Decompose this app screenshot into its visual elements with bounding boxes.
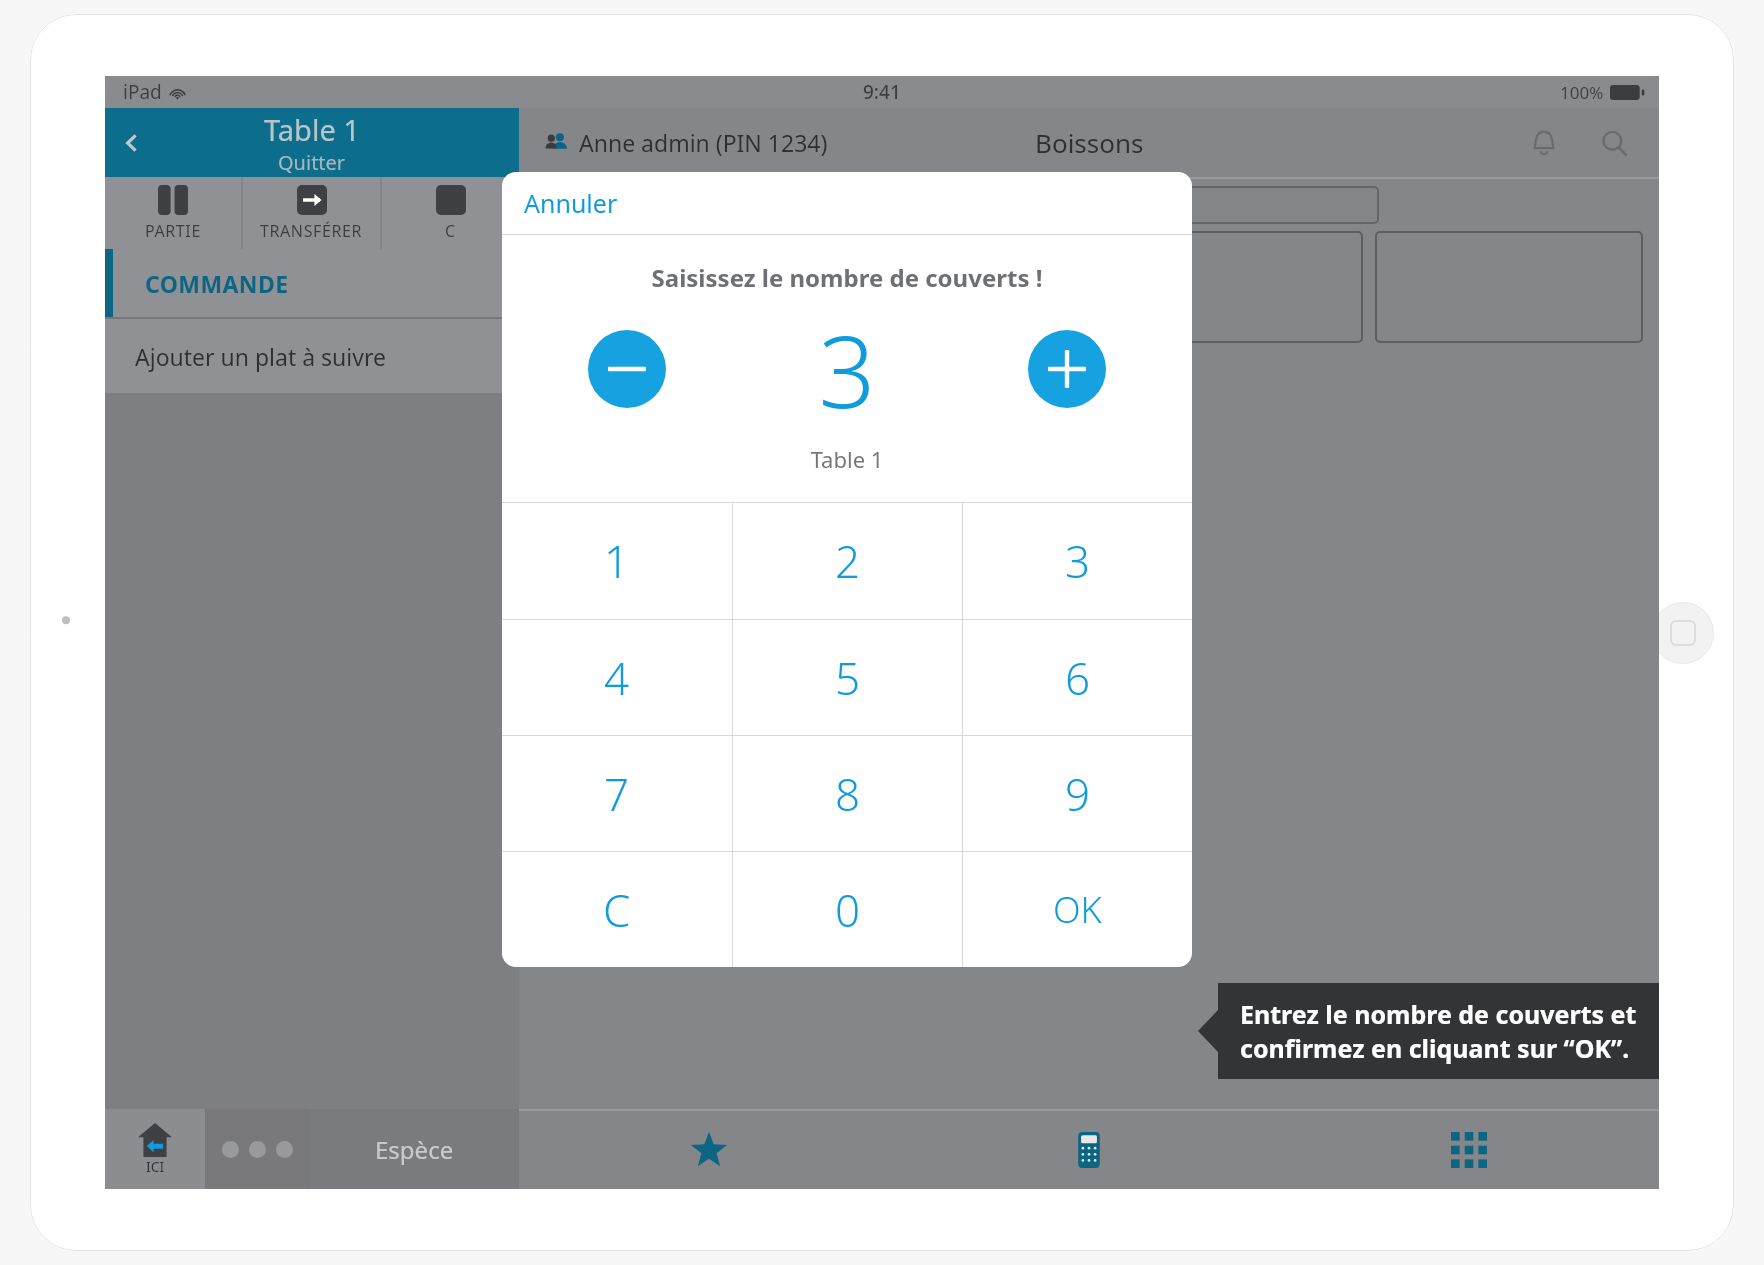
button[interactable]: 3: [963, 503, 1192, 619]
staticText: 3: [1065, 531, 1091, 591]
staticText: C: [445, 220, 456, 242]
button[interactable]: ICI: [105, 1109, 205, 1189]
button[interactable]: 7: [502, 736, 732, 851]
staticText: C: [603, 880, 631, 940]
staticText: Ajouter un plat à suivre: [135, 341, 386, 372]
staticText: 2: [835, 531, 861, 591]
button[interactable]: 4: [502, 620, 732, 735]
staticText: Saisissez le nombre de couverts !: [502, 261, 1192, 294]
staticText: 1: [604, 531, 630, 591]
button[interactable]: OK: [963, 852, 1192, 967]
button[interactable]: 9: [963, 736, 1192, 851]
button[interactable]: Back: [105, 116, 159, 170]
button[interactable]: More: [205, 1109, 310, 1189]
button[interactable]: PARTIE: [105, 177, 241, 249]
staticText: 6: [1065, 648, 1091, 708]
button[interactable]: C: [502, 852, 732, 967]
staticText: Quitter: [278, 149, 346, 176]
staticText: Vin blanc: [618, 271, 721, 304]
button[interactable]: Vin rouge: [815, 231, 1083, 343]
staticText: 8: [835, 764, 861, 824]
staticText: 9:41: [863, 79, 901, 105]
button[interactable]: Annuler: [502, 172, 1192, 234]
button[interactable]: 2: [733, 503, 962, 619]
button[interactable]: Search: [1593, 122, 1635, 164]
staticText: 7: [604, 764, 630, 824]
button[interactable]: [799, 186, 1379, 224]
button[interactable]: Notifications: [1523, 122, 1565, 164]
button[interactable]: 1: [502, 503, 732, 619]
staticText: Anne admin (PIN 1234): [579, 127, 828, 158]
button[interactable]: Favorites: [519, 1111, 899, 1189]
button[interactable]: Decrease: [588, 330, 666, 408]
button[interactable]: 5: [733, 620, 962, 735]
button[interactable]: Ajouter un plat à suivre: [105, 319, 519, 393]
staticText: 0: [835, 880, 861, 940]
button[interactable]: Espèce: [310, 1109, 519, 1189]
button[interactable]: 0: [733, 852, 962, 967]
staticText: ICI: [146, 1157, 165, 1176]
staticText: Table 1: [502, 444, 1192, 474]
staticText: TRANSFÉRER: [260, 220, 363, 242]
staticText: 100%: [1560, 81, 1604, 104]
button[interactable]: C: [382, 177, 519, 249]
staticText: Boissons: [1035, 125, 1144, 160]
staticText: 4: [604, 648, 630, 708]
button[interactable]: [1375, 231, 1643, 343]
staticText: 3: [818, 301, 876, 437]
staticText: Espèce: [375, 1133, 454, 1166]
button[interactable]: [1095, 231, 1363, 343]
button[interactable]: Grid: [1279, 1111, 1659, 1189]
button[interactable]: 6: [963, 620, 1192, 735]
button[interactable]: 8: [733, 736, 962, 851]
button[interactable]: Calculator: [899, 1111, 1279, 1189]
staticText: 9: [1065, 764, 1091, 824]
staticText: iPad: [123, 79, 162, 105]
button[interactable]: TRANSFÉRER: [243, 177, 380, 249]
staticText: Vin rouge: [895, 271, 1004, 304]
staticText: Entrez le nombre de couverts et confirme…: [1240, 997, 1637, 1065]
staticText: OK: [1053, 885, 1102, 934]
button[interactable]: Vin blanc: [535, 231, 803, 343]
button[interactable]: Increase: [1028, 330, 1106, 408]
staticText: Annuler: [524, 186, 618, 220]
staticText: Table 1: [264, 110, 360, 149]
staticText: 5: [835, 648, 861, 708]
staticText: PARTIE: [145, 220, 201, 242]
staticText: COMMANDE: [145, 268, 289, 299]
